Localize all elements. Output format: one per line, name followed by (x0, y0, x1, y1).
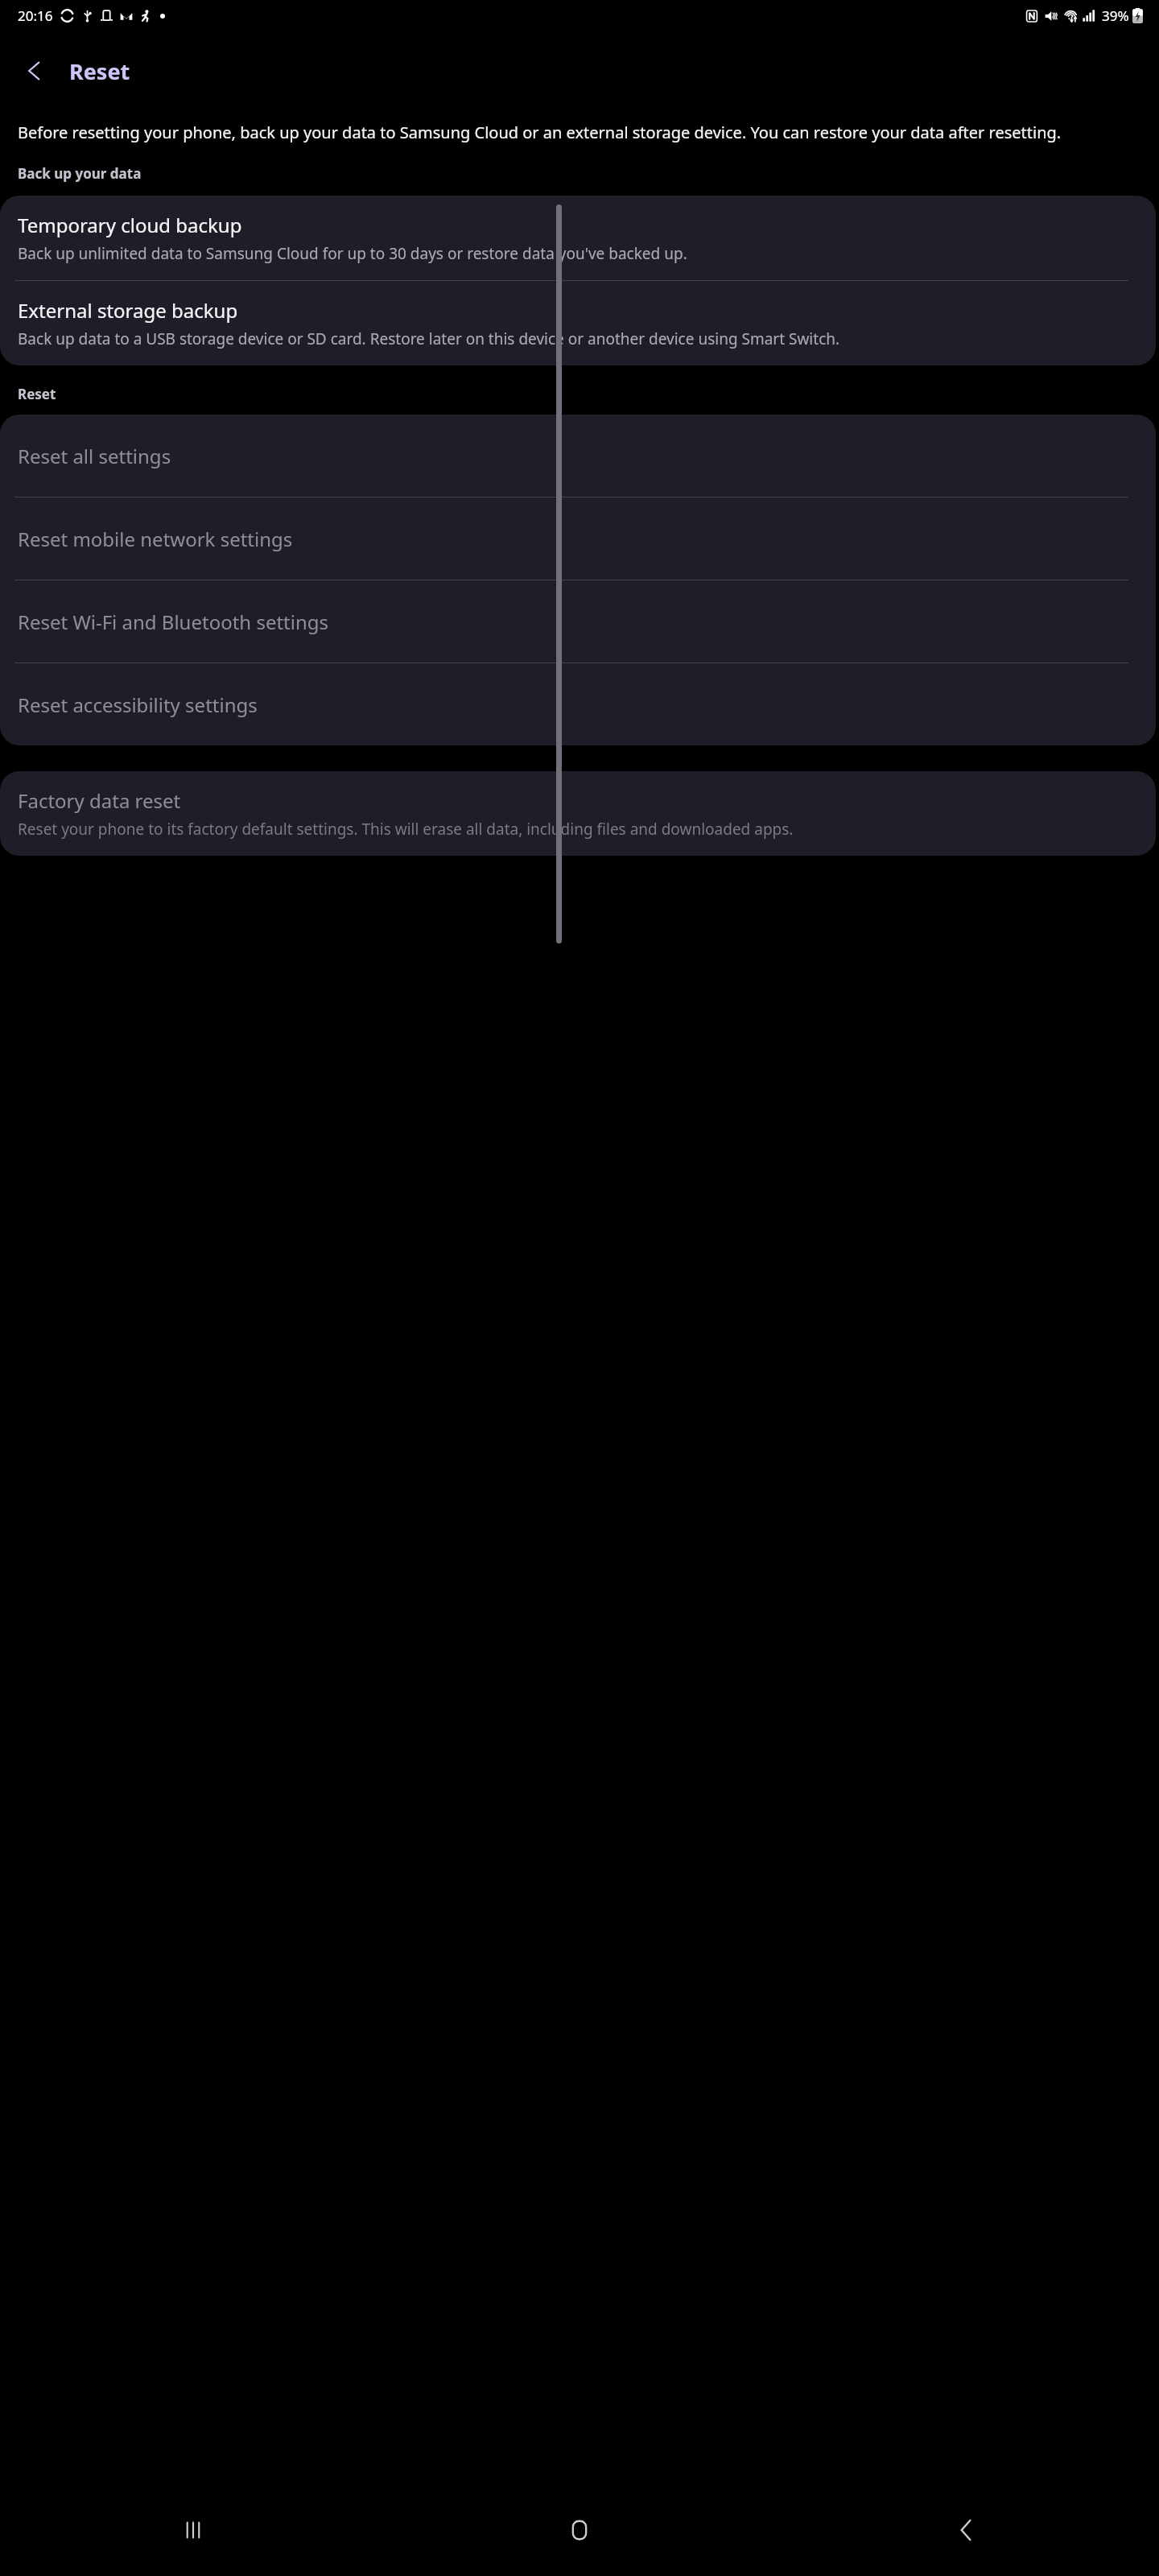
staticText: Reset (69, 56, 130, 86)
staticText: Reset accessibility settings (18, 691, 258, 718)
staticText: Reset Wi-Fi and Bluetooth settings (18, 609, 329, 635)
staticText: Back up unlimited data to Samsung Cloud … (18, 243, 687, 264)
staticText: External storage backup (18, 297, 238, 324)
staticText: Before resetting your phone, back up you… (18, 122, 1062, 143)
staticText: Reset your phone to its factory default … (18, 819, 794, 840)
button[interactable]: Back (11, 47, 58, 94)
staticText: 39% (1102, 6, 1129, 25)
button[interactable]: Reset all settings (0, 415, 1156, 497)
button[interactable]: Home (386, 2484, 773, 2576)
button[interactable]: Reset mobile network settings (0, 497, 1156, 580)
staticText: Factory data reset (18, 787, 181, 814)
button[interactable]: Factory data reset (0, 771, 1156, 856)
button[interactable]: Temporary cloud backup (0, 196, 1156, 280)
staticText: Back up your data (18, 164, 142, 183)
button[interactable]: Back (773, 2484, 1159, 2576)
staticText: Reset all settings (18, 443, 171, 469)
button[interactable]: Recents (0, 2484, 386, 2576)
staticText: Temporary cloud backup (18, 212, 242, 238)
button[interactable]: Reset accessibility settings (0, 663, 1156, 745)
button[interactable]: Reset Wi-Fi and Bluetooth settings (0, 580, 1156, 663)
staticText: Reset mobile network settings (18, 526, 293, 552)
staticText: Reset (18, 385, 56, 403)
staticText: Back up data to a USB storage device or … (18, 328, 840, 349)
staticText: 20:16 (18, 6, 53, 25)
button[interactable]: External storage backup (0, 281, 1156, 365)
